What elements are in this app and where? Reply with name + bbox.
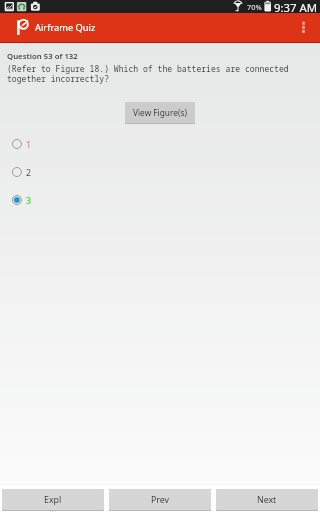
- staticText: Airframe Quiz: [35, 21, 96, 34]
- staticText: Prev: [151, 494, 170, 506]
- staticText: 3: [26, 195, 32, 207]
- staticText: Next: [257, 494, 277, 506]
- staticText: 70%: [247, 2, 262, 12]
- button[interactable]: Next: [216, 489, 318, 511]
- staticText: Expl: [44, 494, 62, 506]
- button[interactable]: Expl: [2, 489, 104, 511]
- button[interactable]: Prev: [109, 489, 211, 511]
- staticText: 2: [26, 167, 32, 179]
- staticText: (Refer to Figure 18.) Which of the batte…: [7, 63, 289, 84]
- staticText: Question 53 of 132: [7, 51, 78, 62]
- button[interactable]: 2: [0, 159, 320, 185]
- button[interactable]: View Figure(s): [125, 102, 195, 124]
- button[interactable]: 3: [0, 187, 320, 213]
- staticText: 9:37 AM: [274, 0, 318, 13]
- button[interactable]: 1: [0, 131, 320, 157]
- staticText: View Figure(s): [133, 107, 187, 118]
- staticText: 1: [26, 139, 32, 151]
- button[interactable]: More options: [294, 13, 320, 43]
